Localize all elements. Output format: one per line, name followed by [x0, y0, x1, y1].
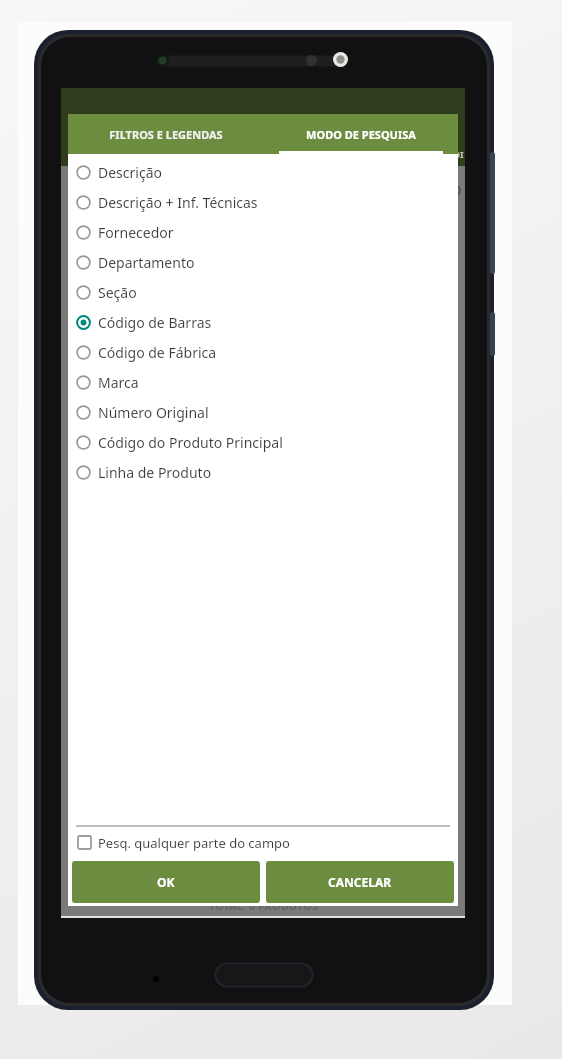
staticText: MODO DE PESQUISA [306, 127, 416, 142]
button[interactable]: Linha de Produto [68, 457, 458, 487]
staticText: Marca [98, 373, 139, 392]
staticText: Fornecedor [98, 223, 174, 242]
button[interactable]: OK [72, 861, 260, 903]
staticText: Pesq. qualquer parte do campo [98, 834, 290, 852]
staticText: TOTAL: 0 PRODUTOS [209, 898, 318, 913]
button[interactable]: Marca [68, 367, 458, 397]
button[interactable]: FILTROS E LEGENDAS [68, 114, 263, 154]
staticText: Seção [98, 283, 137, 302]
staticText: OK [157, 874, 175, 890]
staticText: Departamento [98, 253, 195, 272]
staticText: Código de Barras [98, 313, 212, 332]
staticText: Código do Produto Principal [98, 433, 283, 452]
staticText: Código de Fábrica [98, 343, 217, 362]
button[interactable]: Número Original [68, 397, 458, 427]
staticText: Linha de Produto [98, 463, 212, 482]
staticText: Número Original [98, 403, 209, 422]
button[interactable]: Pesq. qualquer parte do campo [68, 827, 458, 858]
staticText: FILTROS E LEGENDAS [109, 127, 223, 142]
button[interactable]: Departamento [68, 247, 458, 277]
button[interactable]: Código de Fábrica [68, 337, 458, 367]
button[interactable]: MODO DE PESQUISA [263, 114, 458, 154]
button[interactable]: CANCELAR [266, 861, 454, 903]
staticText: Descrição + Inf. Técnicas [98, 193, 258, 212]
staticText: ROI [447, 148, 464, 160]
staticText: Descrição [98, 163, 162, 182]
button[interactable]: Descrição + Inf. Técnicas [68, 187, 458, 217]
button[interactable]: Código do Produto Principal [68, 427, 458, 457]
button[interactable]: Fornecedor [68, 217, 458, 247]
staticText: CANCELAR [328, 874, 392, 890]
button[interactable]: Código de Barras [68, 307, 458, 337]
button[interactable]: Seção [68, 277, 458, 307]
button[interactable]: Descrição [68, 157, 458, 187]
